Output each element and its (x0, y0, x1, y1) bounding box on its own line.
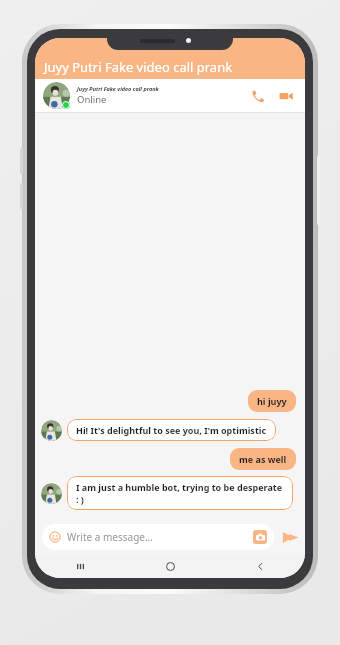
staticText: Juyy Putri Fake video call prank (44, 58, 233, 76)
button[interactable]: I am just a humble bot, trying to be des… (67, 476, 293, 510)
staticText: Online (77, 93, 107, 106)
staticText: Hi! It's delightful to see you, I'm opti… (76, 424, 267, 436)
button[interactable]: Recents (35, 555, 125, 578)
staticText: Juyy Putri Fake video call prank (77, 85, 159, 92)
staticText: Write a message... (67, 530, 253, 544)
button[interactable]: Send (278, 525, 302, 549)
button[interactable]: Back (215, 555, 305, 578)
staticText: hi juyy (257, 395, 287, 407)
button[interactable]: Voice call (246, 85, 268, 107)
button[interactable]: Write a message... (42, 524, 274, 550)
button[interactable]: Juyy Putri Fake video call prank (35, 79, 305, 112)
button[interactable]: Home (125, 555, 215, 578)
staticText: me as well (239, 453, 287, 465)
button[interactable]: Video call (275, 85, 297, 107)
staticText: I am just a humble bot, trying to be des… (76, 481, 284, 505)
button[interactable]: hi juyy (248, 390, 296, 412)
button[interactable]: me as well (230, 448, 296, 470)
button[interactable]: Hi! It's delightful to see you, I'm opti… (67, 419, 276, 441)
button[interactable]: Camera (253, 530, 267, 544)
